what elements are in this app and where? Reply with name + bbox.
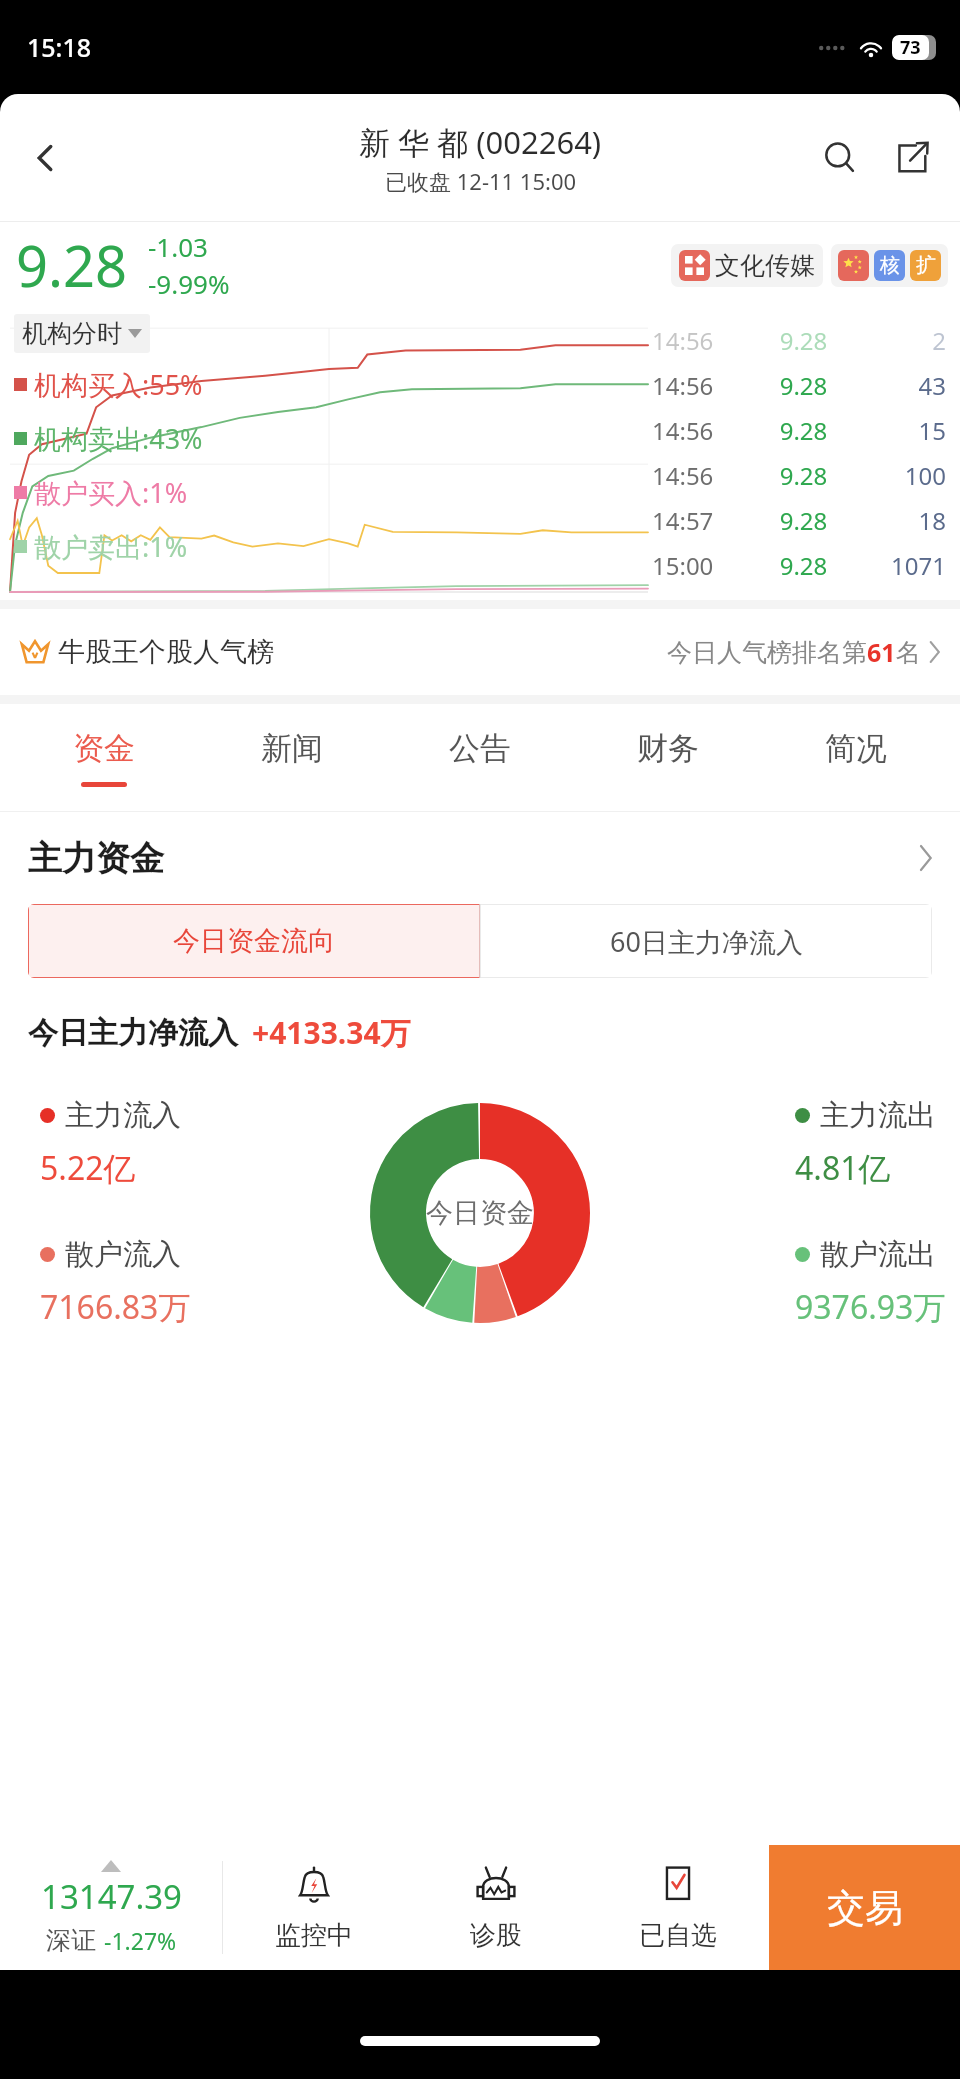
- button[interactable]: 资金: [10, 704, 198, 812]
- staticText: 扩: [916, 253, 936, 278]
- staticText: 新 华 都 (002264): [359, 121, 602, 163]
- staticText: 深证: [46, 1925, 96, 1956]
- staticText: 核: [880, 253, 900, 278]
- staticText: 已收盘 12-11 15:00: [385, 166, 577, 196]
- staticText: 主力资金: [28, 837, 164, 880]
- staticText: 交易: [827, 1884, 903, 1932]
- staticText: -1.27%: [104, 1925, 177, 1956]
- staticText: 今日资金流向: [173, 924, 335, 958]
- button[interactable]: 已自选: [587, 1845, 769, 1970]
- staticText: 机构分时: [22, 318, 122, 349]
- staticText: +4133.34万: [252, 1012, 411, 1053]
- button[interactable]: Back: [14, 126, 78, 190]
- staticText: 1071: [851, 549, 946, 582]
- staticText: 9.28: [756, 369, 851, 402]
- button[interactable]: Search: [808, 126, 872, 190]
- staticText: 7166.83万: [40, 1285, 191, 1329]
- button[interactable]: 今日资金流向: [28, 904, 480, 978]
- staticText: 牛股王个股人气榜: [58, 635, 274, 669]
- staticText: 9.28: [756, 549, 851, 582]
- button[interactable]: 核: [831, 244, 948, 287]
- staticText: 13147.39: [41, 1874, 182, 1919]
- staticText: -9.99%: [148, 266, 230, 301]
- staticText: 14:56: [652, 324, 756, 357]
- staticText: 14:56: [652, 369, 756, 402]
- button[interactable]: 文化传媒: [671, 244, 823, 287]
- staticText: 18: [851, 504, 946, 537]
- staticText: 73: [900, 35, 921, 60]
- staticText: 43: [851, 369, 946, 402]
- staticText: 今日主力净流入: [28, 1014, 238, 1052]
- staticText: 14:56: [652, 414, 756, 447]
- staticText: 14:57: [652, 504, 756, 537]
- staticText: 简况: [825, 729, 887, 768]
- staticText: 9.28: [16, 227, 128, 303]
- staticText: 9.28: [756, 414, 851, 447]
- staticText: 2: [851, 324, 946, 357]
- button[interactable]: 新闻: [198, 704, 386, 812]
- staticText: 散户卖出:1%: [34, 528, 188, 565]
- staticText: 资金: [73, 729, 135, 768]
- staticText: 9.28: [756, 504, 851, 537]
- staticText: 15: [851, 414, 946, 447]
- button[interactable]: Share: [880, 126, 944, 190]
- button[interactable]: 监控中: [223, 1845, 405, 1970]
- button[interactable]: 诊股: [405, 1845, 587, 1970]
- staticText: 财务: [637, 729, 699, 768]
- staticText: 公告: [449, 729, 511, 768]
- button[interactable]: 交易: [769, 1845, 960, 1970]
- staticText: -1.03: [148, 229, 208, 264]
- staticText: 4.81亿: [795, 1146, 891, 1190]
- button[interactable]: 公告: [386, 704, 574, 812]
- staticText: 61: [867, 635, 896, 669]
- staticText: 15:00: [652, 549, 756, 582]
- staticText: 9.28: [756, 459, 851, 492]
- button[interactable]: 财务: [574, 704, 762, 812]
- staticText: 新闻: [261, 729, 323, 768]
- button[interactable]: 简况: [762, 704, 950, 812]
- staticText: 15:18: [27, 30, 92, 64]
- staticText: 9.28: [756, 324, 851, 357]
- staticText: 今日资金: [426, 1196, 534, 1230]
- staticText: 散户买入:1%: [34, 474, 188, 511]
- staticText: 主力流入: [65, 1097, 181, 1134]
- staticText: 机构卖出:43%: [34, 420, 203, 457]
- button[interactable]: 机构分时: [14, 314, 150, 353]
- button[interactable]: 60日主力净流入: [480, 904, 932, 978]
- staticText: 主力流出: [820, 1097, 936, 1134]
- staticText: 60日主力净流入: [610, 923, 803, 960]
- staticText: 14:56: [652, 459, 756, 492]
- staticText: 今日人气榜排名第: [667, 637, 867, 668]
- button[interactable]: 13147.39: [0, 1845, 222, 1970]
- staticText: 5.22亿: [40, 1146, 136, 1190]
- staticText: 监控中: [275, 1919, 353, 1952]
- button[interactable]: 牛股王个股人气榜: [0, 609, 960, 695]
- staticText: 已自选: [639, 1919, 717, 1952]
- staticText: 名: [896, 637, 921, 668]
- staticText: 散户流入: [65, 1236, 181, 1273]
- staticText: 100: [851, 459, 946, 492]
- staticText: 诊股: [470, 1919, 522, 1952]
- staticText: 散户流出: [820, 1236, 936, 1273]
- staticText: 文化传媒: [715, 250, 815, 281]
- button[interactable]: 主力资金: [0, 812, 960, 904]
- staticText: 机构买入:55%: [34, 366, 203, 403]
- staticText: 9376.93万: [795, 1285, 946, 1329]
